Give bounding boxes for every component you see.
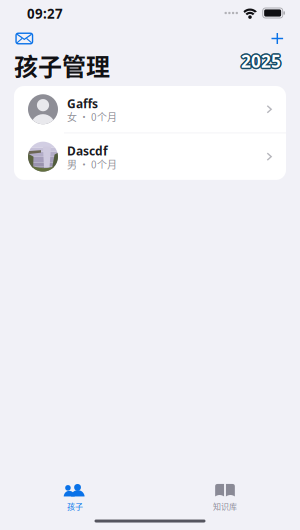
staticText: 女 · 0个月 [67, 109, 117, 124]
staticText: 2025 [241, 51, 281, 74]
staticText: 2025 [241, 48, 281, 71]
staticText: Dascdf [67, 143, 108, 159]
staticText: 孩子 [67, 500, 83, 512]
button[interactable]: Messages [10, 27, 39, 50]
staticText: 2025 [242, 48, 282, 71]
staticText: 男 · 0个月 [67, 157, 117, 171]
staticText: 孩子管理 [14, 48, 110, 82]
button[interactable]: Gaffs [14, 86, 286, 132]
staticText: 2025 [242, 51, 282, 74]
button[interactable]: 知识库 [150, 462, 300, 516]
staticText: 2025 [240, 51, 280, 74]
staticText: 09:27 [27, 5, 63, 22]
button[interactable]: 孩子 [0, 462, 150, 516]
staticText: 2025 [239, 49, 279, 72]
staticText: 2025 [240, 48, 280, 71]
staticText: 2025 [242, 49, 282, 72]
staticText: 知识库 [213, 500, 237, 512]
button[interactable]: Add child [265, 27, 290, 50]
staticText: Gaffs [67, 95, 98, 111]
staticText: 2025 [241, 49, 281, 72]
button[interactable]: Dascdf [14, 133, 286, 180]
